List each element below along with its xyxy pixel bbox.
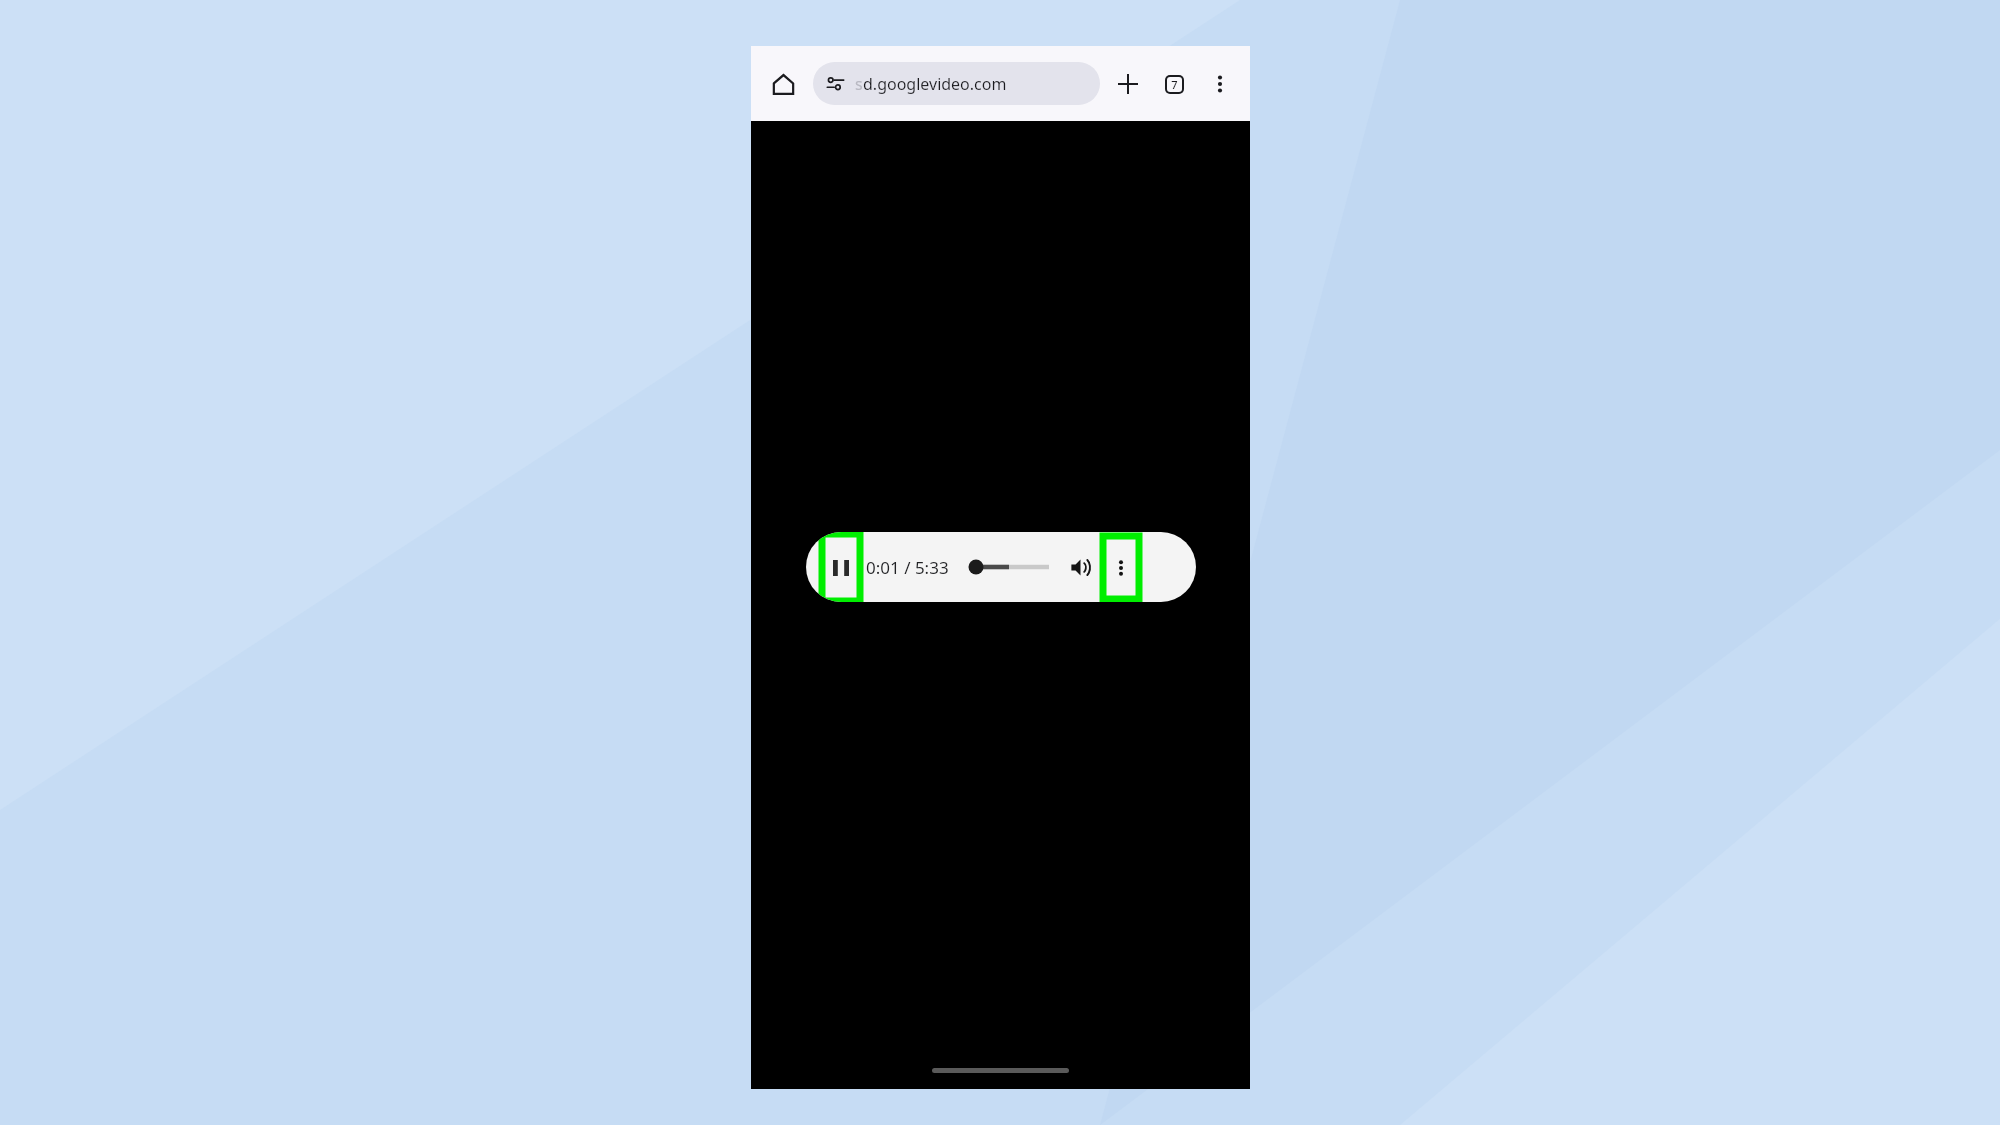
staticText: 0:01 / 5:33 bbox=[866, 556, 949, 579]
staticText: s bbox=[855, 73, 863, 95]
button[interactable]: Pause bbox=[822, 534, 860, 601]
button[interactable]: Home bbox=[761, 62, 805, 106]
button[interactable]: More player options bbox=[1103, 536, 1139, 599]
button[interactable]: More options bbox=[1198, 62, 1242, 106]
staticText: d.googlevideo.com bbox=[863, 73, 1007, 95]
button[interactable]: Seek bbox=[969, 552, 1049, 582]
button[interactable]: s bbox=[813, 62, 1100, 105]
button[interactable]: Switch tabs, 7 open bbox=[1152, 62, 1196, 106]
button[interactable]: New tab bbox=[1106, 62, 1150, 106]
staticText: 7 bbox=[1171, 77, 1178, 92]
button[interactable]: Mute bbox=[1063, 550, 1097, 584]
